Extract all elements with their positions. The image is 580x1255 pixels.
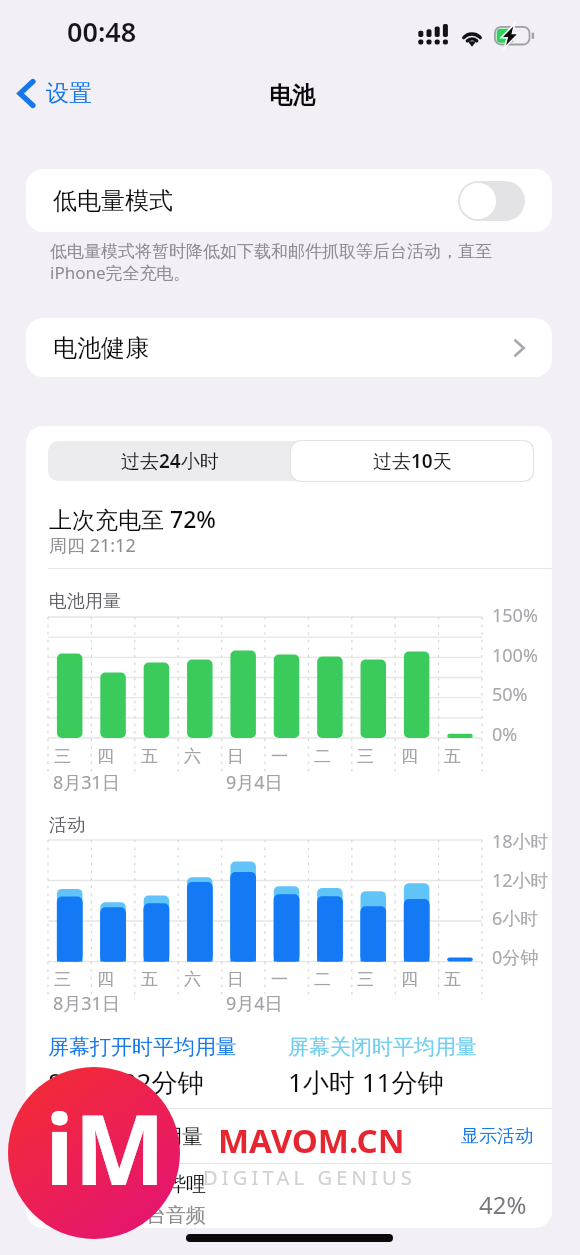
staticText: MAVOM.CN	[218, 1118, 405, 1163]
staticText: 6小时	[492, 906, 539, 931]
staticText: 过去10天	[373, 448, 452, 474]
staticText: 低电量模式将暂时降低如下载和邮件抓取等后台活动，直至iPhone完全充电。	[50, 241, 497, 285]
staticText: 过去24小时	[121, 448, 219, 474]
staticText: 屏幕关闭时平均用量	[288, 1034, 477, 1060]
staticText: 四	[97, 746, 114, 767]
staticText: 8月31日	[53, 770, 120, 795]
staticText: 二	[314, 746, 331, 767]
staticText: 一	[271, 746, 288, 767]
staticText: 0分钟	[492, 945, 539, 970]
staticText: 18小时	[492, 829, 549, 854]
staticText: 8月31日	[53, 991, 120, 1016]
staticText: 后台音频	[126, 1203, 206, 1228]
staticText: 0%	[492, 722, 518, 747]
staticText: 12小时	[492, 868, 549, 893]
staticText: 三	[357, 969, 374, 990]
staticText: 150%	[492, 603, 538, 628]
staticText: 五	[141, 969, 158, 990]
staticText: 四	[97, 969, 114, 990]
staticText: 显示活动	[461, 1125, 533, 1148]
staticText: 8小时 22分钟	[48, 1064, 204, 1100]
button[interactable]: 低电量模式开关	[458, 181, 525, 221]
staticText: iM	[45, 1081, 166, 1213]
staticText: 日	[227, 969, 244, 990]
other: 电池健康	[514, 339, 525, 357]
staticText: 六	[184, 746, 201, 767]
button[interactable]: 设置	[12, 74, 100, 112]
staticText: 哔哩哔哩	[126, 1172, 206, 1197]
button[interactable]: 过去24小时	[48, 441, 291, 481]
staticText: 电池健康	[53, 333, 149, 363]
button[interactable]: 哔哩哔哩	[26, 1164, 552, 1228]
button[interactable]: 低电量模式	[26, 169, 552, 232]
staticText: 低电量模式	[53, 186, 173, 216]
staticText: 四	[401, 746, 418, 767]
staticText: 日	[227, 746, 244, 767]
button[interactable]: 电池健康	[26, 318, 552, 377]
staticText: 按 App 显示用量	[48, 1122, 204, 1151]
staticText: 活动	[49, 814, 85, 837]
staticText: 周四 21:12	[49, 533, 136, 558]
staticText: 9月4日	[226, 991, 283, 1016]
staticText: 设置	[46, 79, 92, 108]
staticText: 上次充电至 72%	[49, 503, 216, 534]
staticText: 四	[401, 969, 418, 990]
staticText: 00:48	[67, 13, 137, 50]
staticText: 五	[444, 746, 461, 767]
staticText: 五	[444, 969, 461, 990]
staticText: 1小时 11分钟	[288, 1064, 444, 1100]
staticText: 50%	[492, 682, 528, 707]
staticText: 六	[184, 969, 201, 990]
staticText: DIGITAL GENIUS	[203, 1164, 416, 1191]
staticText: 100%	[492, 643, 538, 668]
staticText: 一	[271, 969, 288, 990]
button[interactable]: 过去10天	[291, 441, 533, 481]
staticText: 三	[54, 746, 71, 767]
staticText: 42%	[479, 1188, 527, 1221]
staticText: 9月4日	[226, 770, 283, 795]
staticText: 五	[141, 746, 158, 767]
staticText: 三	[54, 969, 71, 990]
staticText: 二	[314, 969, 331, 990]
staticText: 屏幕打开时平均用量	[48, 1034, 237, 1060]
staticText: 三	[357, 746, 374, 767]
button[interactable]: 显示活动	[449, 1117, 552, 1156]
staticText: 电池用量	[49, 590, 121, 613]
staticText: 电池	[269, 81, 315, 110]
